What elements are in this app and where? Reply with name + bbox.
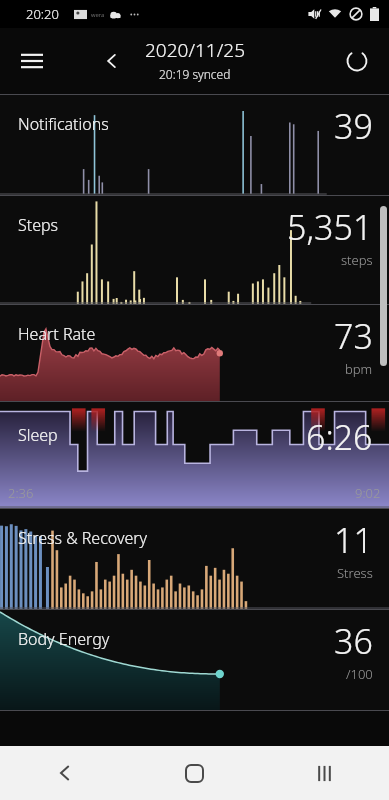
staticText: 20:20 — [26, 5, 59, 23]
staticText: 2020/11/25 — [145, 37, 245, 63]
staticText: 5,351 — [287, 204, 373, 250]
button[interactable]: Sync — [335, 39, 379, 83]
button[interactable]: Home — [129, 746, 259, 800]
staticText: Stress — [337, 564, 373, 582]
staticText: Stress & Recovery — [18, 527, 148, 549]
staticText: /100 — [346, 665, 373, 683]
button[interactable]: Stress & Recovery — [0, 509, 389, 609]
staticText: 36 — [334, 618, 373, 664]
staticText: wera — [91, 11, 105, 19]
button[interactable]: Recent apps — [259, 746, 389, 800]
button[interactable]: Heart Rate — [0, 305, 389, 401]
button[interactable]: Menu — [10, 39, 54, 83]
staticText: 11 — [334, 517, 373, 563]
button[interactable]: Back — [0, 746, 129, 800]
staticText: Body Energy — [18, 628, 110, 650]
staticText: 6:26 — [306, 414, 373, 460]
button[interactable]: Sleep — [0, 402, 389, 508]
staticText: Steps — [18, 214, 59, 236]
staticText: 73 — [334, 313, 373, 359]
staticText: Notifications — [18, 113, 109, 135]
staticText: 39 — [334, 103, 373, 149]
staticText: 9:02 — [355, 484, 381, 502]
button[interactable]: Previous day — [92, 41, 132, 81]
staticText: 20:19 synced — [159, 66, 231, 82]
staticText: 2:36 — [8, 484, 34, 502]
button[interactable]: Steps — [0, 196, 389, 304]
staticText: Sleep — [18, 424, 58, 446]
staticText: Heart Rate — [18, 323, 96, 345]
button[interactable]: Notifications — [0, 95, 389, 195]
button[interactable]: Body Energy — [0, 610, 389, 710]
button[interactable]: 2020/11/25 — [145, 37, 245, 82]
staticText: steps — [341, 251, 373, 269]
staticText: bpm — [345, 360, 373, 378]
